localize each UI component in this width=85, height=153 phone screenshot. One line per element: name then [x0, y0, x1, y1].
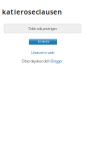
- staticText: katieroseclausen: [2, 8, 61, 16]
- staticText: Beranda: [37, 40, 48, 43]
- staticText: Tidak ada postingan.: [28, 26, 57, 31]
- staticText: Blogger: [50, 58, 63, 64]
- button[interactable]: Lihat versi web: [0, 50, 85, 55]
- button[interactable]: Beranda: [29, 39, 57, 45]
- staticText: Lihat versi web: [31, 50, 54, 55]
- staticText: .: [63, 58, 64, 64]
- staticText: Diberdayakan oleh: [21, 58, 50, 64]
